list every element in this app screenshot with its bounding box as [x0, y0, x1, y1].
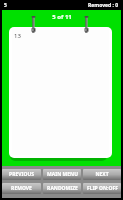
- staticText: PREVIOUS: [9, 171, 34, 178]
- staticText: 5: [4, 2, 7, 9]
- button[interactable]: FLIP ON:OFF: [83, 183, 121, 194]
- button[interactable]: NEXT: [83, 169, 121, 180]
- button[interactable]: REMOVE: [2, 183, 41, 194]
- staticText: 5 of 11: [52, 13, 72, 21]
- staticText: FLIP ON:OFF: [87, 185, 118, 192]
- staticText: Removed : 0: [88, 2, 119, 9]
- staticText: REMOVE: [11, 185, 32, 192]
- staticText: 13: [14, 32, 21, 40]
- button[interactable]: RANDOMIZE: [43, 183, 81, 194]
- button[interactable]: MAIN MENU: [43, 169, 81, 180]
- staticText: NEXT: [95, 171, 109, 178]
- button[interactable]: PREVIOUS: [2, 169, 41, 180]
- staticText: RANDOMIZE: [47, 185, 78, 192]
- staticText: MAIN MENU: [47, 171, 78, 178]
- button[interactable]: 13: [12, 30, 109, 155]
